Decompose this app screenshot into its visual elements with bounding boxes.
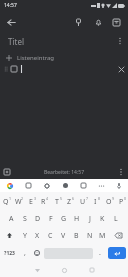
- button[interactable]: T: [50, 193, 63, 210]
- button[interactable]: ,: [19, 244, 31, 262]
- button[interactable]: I: [89, 193, 102, 210]
- button[interactable]: Anpinnen: [68, 12, 88, 32]
- button[interactable]: Spracheingabe: [110, 179, 128, 192]
- button[interactable]: G: [57, 210, 70, 227]
- button[interactable]: W: [12, 193, 24, 210]
- button[interactable]: Weitere Optionen: [112, 33, 128, 49]
- button[interactable]: Y: [18, 227, 31, 244]
- button[interactable]: Eingabe: [108, 247, 126, 259]
- staticText: Q: [3, 197, 9, 207]
- button[interactable]: L: [109, 210, 122, 227]
- button[interactable]: P: [115, 193, 128, 210]
- button[interactable]: Umschalttaste: [0, 227, 18, 244]
- button[interactable]: Google Suche: [0, 179, 19, 192]
- button[interactable]: Hinzufügen: [0, 165, 14, 179]
- button[interactable]: .: [94, 244, 106, 262]
- staticText: W: [15, 197, 22, 207]
- button[interactable]: Löschen: [109, 227, 128, 244]
- button[interactable]: F: [44, 210, 57, 227]
- staticText: F: [49, 214, 53, 224]
- staticText: 14:57: [4, 2, 17, 9]
- staticText: E: [29, 197, 33, 207]
- button[interactable]: Emoji: [31, 244, 43, 262]
- staticText: T: [55, 197, 59, 207]
- button[interactable]: O: [102, 193, 115, 210]
- button[interactable]: U: [76, 193, 89, 210]
- staticText: 0: [124, 196, 127, 201]
- staticText: M: [99, 231, 106, 241]
- button[interactable]: E: [24, 193, 37, 210]
- staticText: 3: [34, 196, 37, 201]
- staticText: Z: [67, 197, 72, 207]
- button[interactable]: H: [70, 210, 83, 227]
- staticText: 4: [46, 196, 49, 201]
- staticText: D: [35, 214, 41, 224]
- button[interactable]: ?123: [0, 244, 19, 262]
- staticText: Bearbeitet: 14:57: [44, 169, 84, 176]
- staticText: Y: [23, 231, 27, 241]
- button[interactable]: Archivieren: [108, 12, 125, 32]
- staticText: 1: [9, 196, 12, 201]
- staticText: H: [74, 214, 80, 224]
- button[interactable]: Zwischenablage: [19, 179, 38, 192]
- staticText: C: [48, 231, 53, 241]
- staticText: 6: [72, 196, 75, 201]
- button[interactable]: Erinnerung: [88, 12, 108, 32]
- button[interactable]: R: [37, 193, 50, 210]
- staticText: Listeneintrag: [17, 54, 55, 62]
- staticText: G: [61, 214, 67, 224]
- staticText: A: [9, 214, 14, 224]
- staticText: .: [99, 248, 101, 258]
- button[interactable]: Sticker: [56, 179, 74, 192]
- button[interactable]: S: [18, 210, 31, 227]
- staticText: ,: [24, 248, 26, 258]
- staticText: B: [74, 231, 79, 241]
- staticText: Titel: [8, 36, 24, 47]
- button[interactable]: Übersetzen: [74, 179, 92, 192]
- button[interactable]: Eintrag löschen: [0, 63, 128, 75]
- staticText: S: [23, 214, 27, 224]
- staticText: 8: [98, 196, 101, 201]
- staticText: K: [100, 214, 105, 224]
- staticText: ?123: [4, 250, 15, 257]
- button[interactable]: Eintrag löschen: [114, 63, 128, 75]
- staticText: 5: [60, 196, 63, 201]
- button[interactable]: Listeneintrag: [0, 52, 128, 63]
- button[interactable]: V: [57, 227, 70, 244]
- staticText: L: [114, 214, 118, 224]
- button[interactable]: Mehr: [92, 179, 110, 192]
- staticText: I: [94, 197, 97, 207]
- button[interactable]: M: [96, 227, 109, 244]
- staticText: P: [119, 197, 124, 207]
- staticText: O: [106, 197, 112, 207]
- button[interactable]: Z: [63, 193, 76, 210]
- button[interactable]: X: [31, 227, 44, 244]
- button[interactable]: A: [5, 210, 18, 227]
- staticText: J: [89, 214, 91, 224]
- staticText: U: [80, 197, 86, 207]
- staticText: 2: [21, 196, 24, 201]
- staticText: 9: [112, 196, 115, 201]
- button[interactable]: D: [31, 210, 44, 227]
- staticText: R: [41, 197, 46, 207]
- button[interactable]: Startbildschirm: [51, 263, 78, 277]
- button[interactable]: C: [44, 227, 57, 244]
- button[interactable]: J: [83, 210, 96, 227]
- button[interactable]: K: [96, 210, 109, 227]
- staticText: 7: [86, 196, 89, 201]
- staticText: V: [61, 231, 66, 241]
- button[interactable]: N: [83, 227, 96, 244]
- button[interactable]: Zurück: [24, 263, 51, 277]
- button[interactable]: B: [70, 227, 83, 244]
- button[interactable]: Zurück: [0, 11, 22, 33]
- button[interactable]: Q: [0, 193, 12, 210]
- button[interactable]: Letzte Apps: [78, 263, 105, 277]
- staticText: X: [35, 231, 40, 241]
- staticText: N: [87, 231, 93, 241]
- button[interactable]: Weitere Optionen: [114, 165, 128, 179]
- button[interactable]: Einstellungen: [38, 179, 56, 192]
